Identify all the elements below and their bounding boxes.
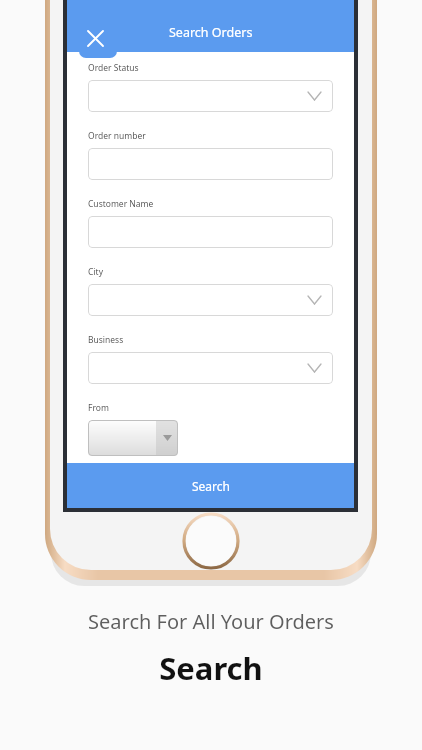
- staticText: Search: [159, 647, 263, 689]
- staticText: Search For All Your Orders: [88, 608, 334, 635]
- staticText: City: [88, 266, 103, 278]
- button[interactable]: [88, 216, 333, 248]
- button[interactable]: Close: [77, 20, 113, 56]
- staticText: Order number: [88, 130, 146, 142]
- button[interactable]: [88, 284, 333, 316]
- staticText: Search: [192, 478, 230, 494]
- staticText: Business: [88, 334, 124, 346]
- staticText: Order Status: [88, 62, 139, 74]
- staticText: From: [88, 402, 109, 414]
- button[interactable]: [88, 80, 333, 112]
- button[interactable]: [88, 420, 178, 456]
- button[interactable]: [88, 352, 333, 384]
- staticText: Customer Name: [88, 198, 154, 210]
- button[interactable]: Search: [67, 463, 354, 508]
- button[interactable]: [88, 148, 333, 180]
- staticText: Search Orders: [169, 24, 253, 41]
